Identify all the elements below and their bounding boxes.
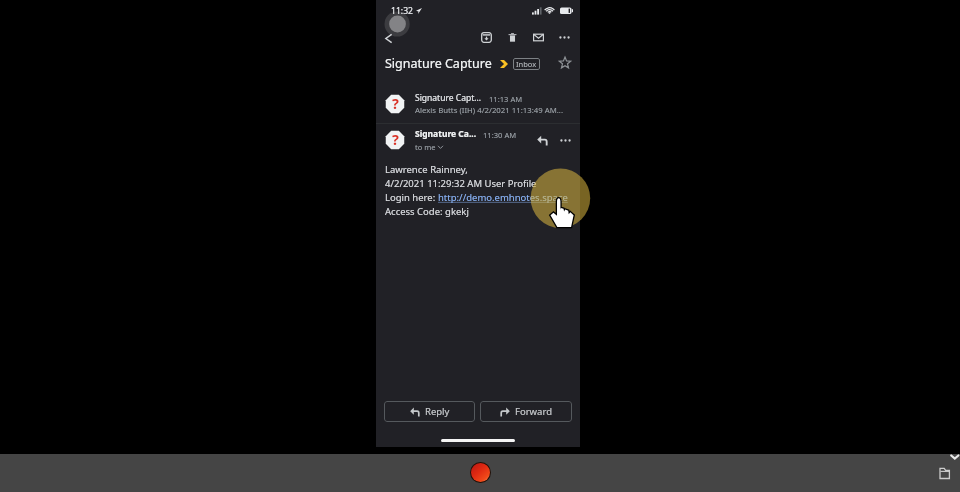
staticText: 11:13 AM xyxy=(489,94,523,104)
staticText: Inbox xyxy=(516,59,537,69)
staticText: Signature Ca... xyxy=(415,128,477,140)
staticText: Signature Capture xyxy=(385,55,492,72)
staticText: to me xyxy=(415,142,436,152)
staticText: ? xyxy=(392,94,399,114)
button[interactable]: Reply xyxy=(532,130,552,150)
staticText: Alexis Butts (IIH) 4/2/2021 11:13:49 AM.… xyxy=(415,105,564,116)
staticText: Login here: xyxy=(385,191,438,204)
staticText: Reply xyxy=(425,405,450,418)
staticText: 11:30 AM xyxy=(483,130,517,140)
button[interactable]: ? xyxy=(376,125,580,155)
staticText: Lawrence Rainney, xyxy=(385,163,468,176)
staticText: Forward xyxy=(515,405,552,418)
button[interactable]: Archive xyxy=(476,27,496,47)
button[interactable]: Star xyxy=(555,53,575,73)
button[interactable]: Record xyxy=(471,463,490,482)
button[interactable]: More options xyxy=(554,27,574,47)
button[interactable]: ? xyxy=(376,88,580,120)
button[interactable]: Mark unread xyxy=(528,27,548,47)
staticText: ? xyxy=(392,130,399,150)
staticText: Access Code: gkekj xyxy=(385,205,469,218)
button[interactable]: Reply xyxy=(384,401,475,422)
button[interactable]: Open folder xyxy=(936,464,954,482)
staticText: 4/2/2021 11:29:32 AM User Profile xyxy=(385,177,537,190)
button[interactable]: More options xyxy=(555,130,575,150)
staticText: Signature Capt... xyxy=(415,92,482,104)
button[interactable]: Back xyxy=(376,26,400,50)
button[interactable]: Collapse xyxy=(950,454,960,464)
staticText: 11:32 xyxy=(391,5,413,17)
button[interactable]: Delete xyxy=(502,27,522,47)
button[interactable]: Forward xyxy=(480,401,572,422)
button[interactable]: http://demo.emhnotes.space xyxy=(438,191,568,204)
